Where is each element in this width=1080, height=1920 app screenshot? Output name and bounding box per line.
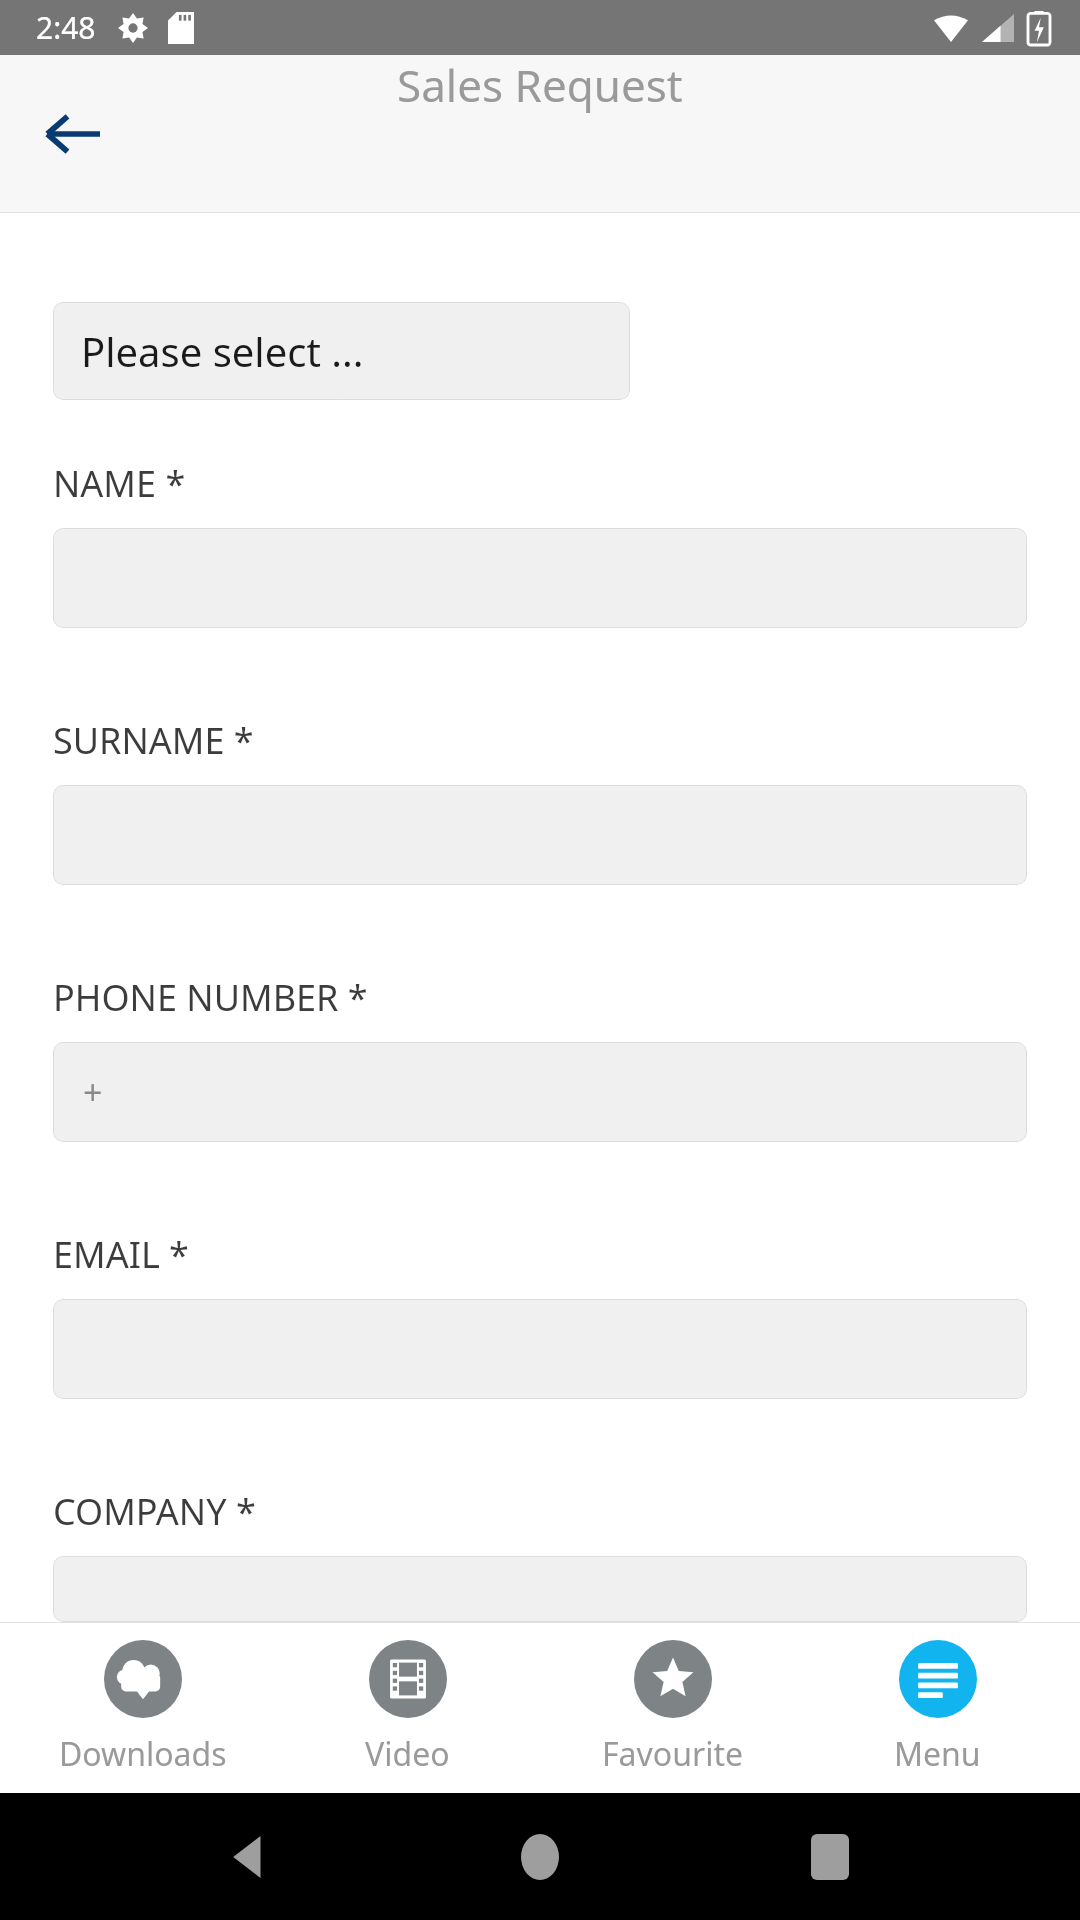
button[interactable]: Back bbox=[210, 1817, 290, 1897]
staticText: Menu bbox=[894, 1732, 981, 1776]
button[interactable]: Recent apps bbox=[790, 1817, 870, 1897]
button[interactable]: Downloads bbox=[20, 1634, 265, 1782]
button[interactable]: Please select ... bbox=[53, 302, 630, 400]
staticText: PHONE NUMBER * bbox=[53, 973, 368, 1022]
button[interactable]: Back bbox=[24, 86, 120, 182]
staticText: Downloads bbox=[59, 1732, 227, 1776]
staticText: Please select ... bbox=[81, 324, 364, 378]
staticText: 2:48 bbox=[36, 7, 96, 48]
button[interactable] bbox=[53, 1556, 1027, 1622]
staticText: SURNAME * bbox=[53, 716, 254, 765]
staticText: Favourite bbox=[602, 1732, 744, 1776]
staticText: + bbox=[83, 1069, 103, 1115]
staticText: Sales Request bbox=[397, 55, 683, 115]
staticText: EMAIL * bbox=[53, 1230, 189, 1279]
staticText: NAME * bbox=[53, 459, 186, 508]
button[interactable]: Favourite bbox=[550, 1634, 795, 1782]
staticText: Video bbox=[365, 1732, 450, 1776]
button[interactable]: Menu bbox=[815, 1634, 1060, 1782]
button[interactable]: Home bbox=[500, 1817, 580, 1897]
staticText: COMPANY * bbox=[53, 1487, 256, 1536]
button[interactable]: Video bbox=[285, 1634, 530, 1782]
button[interactable]: + bbox=[53, 1042, 1027, 1142]
